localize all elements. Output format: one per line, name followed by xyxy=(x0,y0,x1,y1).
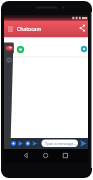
button[interactable] xyxy=(79,139,88,148)
button[interactable] xyxy=(4,43,13,149)
button[interactable] xyxy=(17,140,24,148)
button[interactable] xyxy=(80,45,88,53)
button[interactable] xyxy=(61,150,71,161)
button[interactable] xyxy=(24,140,31,148)
button[interactable] xyxy=(10,140,17,148)
staticText: Type a message... xyxy=(45,141,77,146)
button[interactable] xyxy=(5,43,14,53)
button[interactable] xyxy=(16,45,25,54)
button[interactable] xyxy=(41,139,78,147)
staticText: Chatocam xyxy=(17,26,42,33)
button[interactable] xyxy=(76,23,87,34)
button[interactable] xyxy=(41,150,52,161)
button[interactable] xyxy=(22,150,32,161)
button[interactable] xyxy=(5,24,16,34)
button[interactable] xyxy=(31,140,38,148)
button[interactable] xyxy=(4,21,88,37)
